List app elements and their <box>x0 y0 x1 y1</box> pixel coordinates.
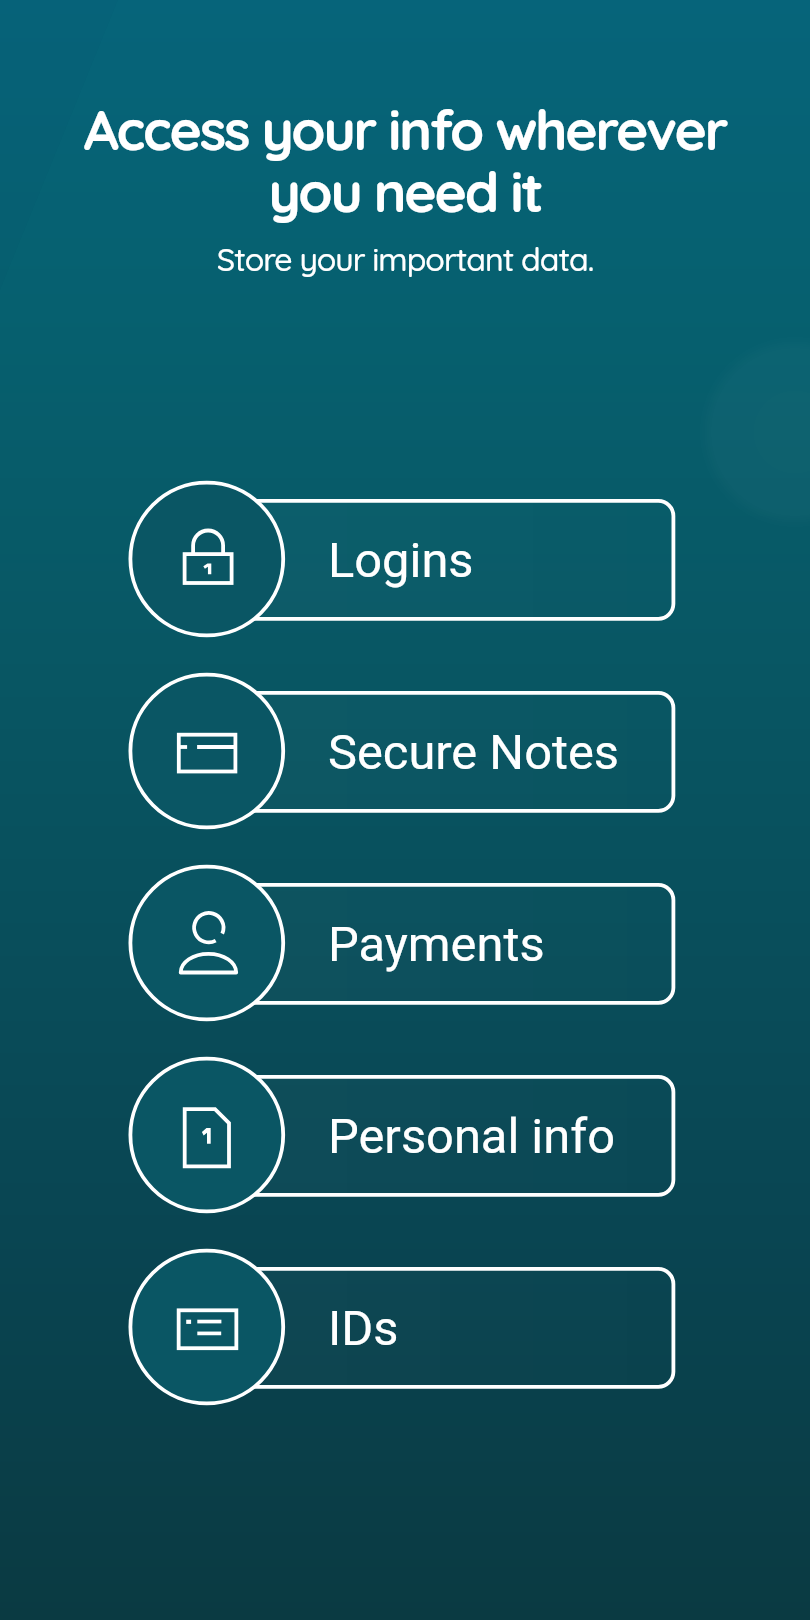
staticText: Access your info wherever you need it <box>58 95 752 225</box>
staticText: Payments <box>328 916 545 973</box>
staticText: Secure Notes <box>328 724 620 781</box>
staticText: Personal info <box>328 1108 615 1165</box>
staticText: Logins <box>328 532 474 589</box>
button[interactable]: Logins <box>128 479 680 639</box>
staticText: IDs <box>328 1300 399 1357</box>
button[interactable]: Payments <box>128 863 680 1023</box>
button[interactable]: IDs <box>128 1247 680 1407</box>
staticText: Store your important data. <box>0 239 810 279</box>
button[interactable]: Secure Notes <box>128 671 680 831</box>
button[interactable]: Personal info <box>128 1055 680 1215</box>
